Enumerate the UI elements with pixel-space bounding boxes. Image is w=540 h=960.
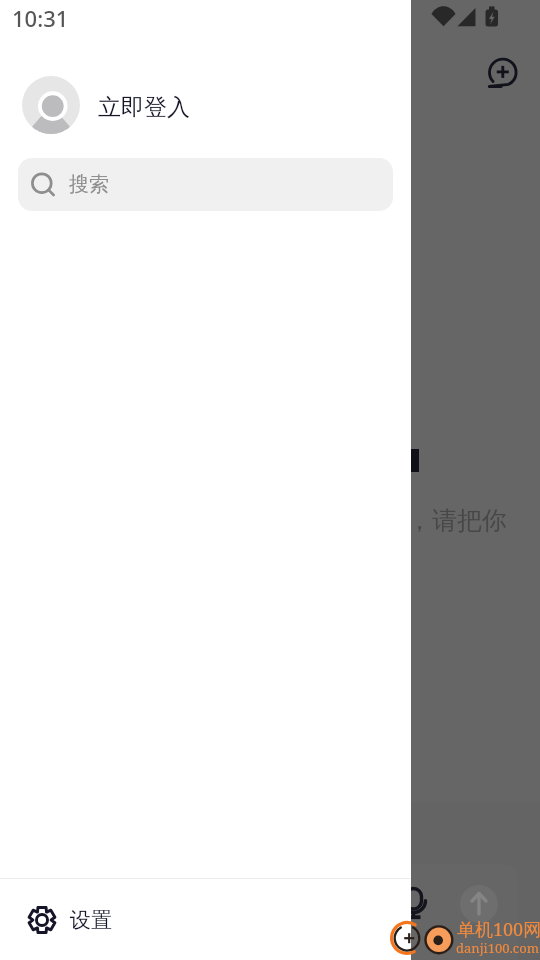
staticText: 单机100网	[457, 917, 540, 942]
staticText: 搜索	[69, 172, 109, 197]
staticText: danji100.com	[456, 939, 539, 957]
staticText: 设置	[70, 907, 112, 933]
staticText: ，请把你	[407, 505, 507, 536]
button[interactable]: New chat	[477, 47, 520, 90]
staticText: 10:31	[12, 3, 69, 33]
button[interactable]: 设置	[0, 879, 411, 960]
button[interactable]: 立即登入	[0, 66, 411, 146]
button[interactable]: 搜索	[18, 158, 393, 211]
staticText: 立即登入	[98, 93, 190, 122]
